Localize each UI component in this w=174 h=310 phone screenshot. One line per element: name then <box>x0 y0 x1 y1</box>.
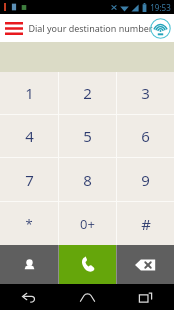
button[interactable]: 7 <box>0 158 58 201</box>
button[interactable]: 8 <box>59 158 116 201</box>
button[interactable]: 9 <box>117 158 174 201</box>
button[interactable]: Back <box>0 284 58 310</box>
button[interactable]: 6 <box>117 115 174 157</box>
staticText: # <box>141 214 151 234</box>
button[interactable]: Open navigation menu <box>3 16 25 40</box>
staticText: 2 <box>83 83 92 103</box>
staticText: 7 <box>25 170 34 190</box>
button[interactable]: # <box>117 202 174 245</box>
button[interactable]: 3 <box>117 72 174 114</box>
button[interactable]: 4 <box>0 115 58 157</box>
staticText: Dial your destination number <box>28 22 153 34</box>
button[interactable]: Home <box>58 284 116 310</box>
button[interactable]: 2 <box>59 72 116 114</box>
button[interactable]: * <box>0 202 58 245</box>
staticText: 3 <box>141 83 150 103</box>
staticText: 1 <box>25 83 34 103</box>
staticText: 9 <box>141 170 150 190</box>
staticText: 8 <box>83 170 92 190</box>
staticText: 19:53 <box>150 2 171 13</box>
button[interactable]: 1 <box>0 72 58 114</box>
staticText: * <box>25 215 33 233</box>
button[interactable]: Contacts <box>0 245 58 284</box>
staticText: 4 <box>25 126 34 146</box>
button[interactable]: 5 <box>59 115 116 157</box>
button[interactable]: Recent apps <box>116 284 174 310</box>
button[interactable]: 0+ <box>59 202 116 245</box>
staticText: 6 <box>141 126 150 146</box>
staticText: 0+ <box>80 215 95 233</box>
button[interactable]: Call <box>59 245 116 284</box>
button[interactable]: Backspace <box>117 245 174 284</box>
button[interactable]: WiFi settings <box>148 16 172 40</box>
staticText: 5 <box>83 126 92 146</box>
